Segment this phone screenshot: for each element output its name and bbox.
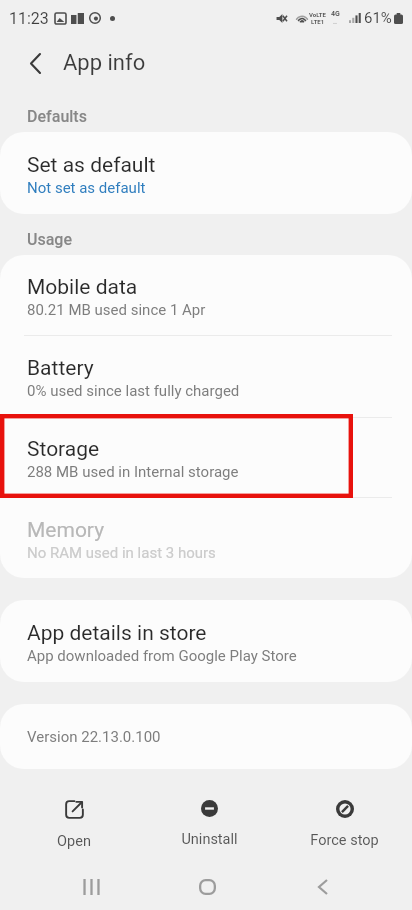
staticText: Storage <box>27 437 100 462</box>
staticText: LTE1 <box>311 18 325 25</box>
staticText: Usage <box>27 230 73 249</box>
staticText: 11:23 <box>9 9 49 28</box>
staticText: App details in store <box>27 621 207 646</box>
staticText: App downloaded from Google Play Store <box>27 647 297 665</box>
staticText: 0% used since last fully charged <box>27 382 240 400</box>
staticText: .. <box>333 18 338 26</box>
staticText: Mobile data <box>27 275 138 300</box>
staticText: Version 22.13.0.100 <box>27 728 161 746</box>
button[interactable]: Battery <box>0 336 412 417</box>
button[interactable]: Memory <box>0 498 412 578</box>
button[interactable]: Open <box>6 800 142 864</box>
staticText: 288 MB used in Internal storage <box>27 463 239 481</box>
button[interactable]: Navigate up <box>14 42 56 84</box>
staticText: Set as default <box>27 153 156 178</box>
button[interactable]: Home <box>149 864 265 910</box>
staticText: Open <box>57 833 91 850</box>
button[interactable]: Set as default <box>0 132 412 214</box>
staticText: Memory <box>27 518 105 543</box>
staticText: Force stop <box>310 832 379 849</box>
staticText: Defaults <box>27 107 87 126</box>
staticText: Uninstall <box>181 831 238 848</box>
button[interactable]: Force stop <box>277 800 412 864</box>
button[interactable]: App details in store <box>0 600 412 682</box>
staticText: VoLTE <box>309 11 326 18</box>
staticText: No RAM used in last 3 hours <box>27 544 216 562</box>
button[interactable]: Mobile data <box>0 255 412 335</box>
staticText: Battery <box>27 356 94 381</box>
button[interactable]: Recent apps <box>33 864 149 910</box>
button[interactable]: Back <box>265 864 381 910</box>
button[interactable]: Storage <box>0 418 412 497</box>
staticText: 61% <box>364 9 392 27</box>
staticText: 4G <box>331 10 340 18</box>
staticText: 80.21 MB used since 1 Apr <box>27 301 206 319</box>
staticText: Not set as default <box>27 179 146 197</box>
staticText: App info <box>63 50 146 76</box>
button[interactable]: Uninstall <box>142 800 277 864</box>
